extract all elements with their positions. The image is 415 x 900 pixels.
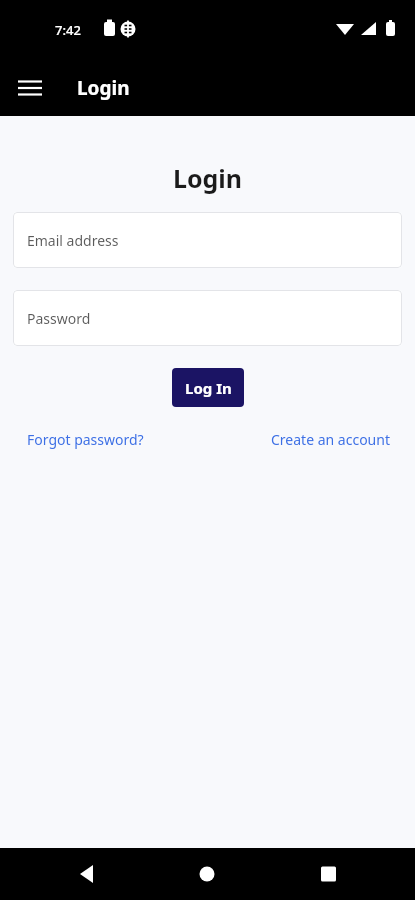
- button[interactable]: Open navigation menu: [9, 67, 51, 109]
- button[interactable]: Email address: [13, 212, 402, 268]
- staticText: 7:42: [55, 21, 81, 39]
- staticText: Email address: [27, 231, 119, 250]
- button[interactable]: Back: [62, 848, 114, 900]
- button[interactable]: Recent apps: [310, 848, 362, 900]
- button[interactable]: Log In: [172, 368, 244, 407]
- button[interactable]: Home: [182, 848, 234, 900]
- staticText: Forgot password?: [27, 430, 144, 449]
- button[interactable]: Create an account: [259, 426, 402, 453]
- staticText: Create an account: [271, 430, 390, 449]
- staticText: Log In: [185, 378, 232, 398]
- staticText: Password: [27, 309, 91, 328]
- staticText: Login: [77, 75, 130, 101]
- button[interactable]: Forgot password?: [13, 426, 158, 453]
- staticText: Login: [0, 161, 415, 195]
- button[interactable]: Password: [13, 290, 402, 346]
